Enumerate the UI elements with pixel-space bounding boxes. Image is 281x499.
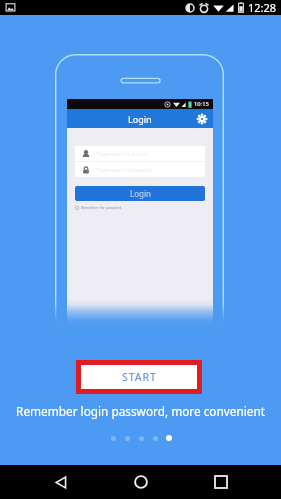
button[interactable]: Back xyxy=(39,465,83,499)
button[interactable]: Recent apps xyxy=(199,465,243,499)
button[interactable]: START xyxy=(81,365,197,389)
button[interactable]: Page 2 xyxy=(120,434,134,442)
staticText: Please enter the account xyxy=(96,151,149,157)
staticText: START xyxy=(122,370,157,384)
staticText: Login xyxy=(128,113,152,125)
button[interactable]: Login xyxy=(75,186,205,201)
button[interactable]: Page 4 xyxy=(148,434,162,442)
staticText: Login xyxy=(130,188,151,199)
staticText: Please enter the password xyxy=(96,167,152,173)
button[interactable]: Home xyxy=(119,465,163,499)
button[interactable]: Page 3 xyxy=(134,434,148,442)
staticText: 12:28 xyxy=(248,0,277,15)
staticText: Remember login password, more convenient xyxy=(16,403,265,419)
button[interactable]: Page 5 xyxy=(162,434,176,442)
staticText: Remember the password xyxy=(81,205,122,210)
button[interactable]: Please enter the password xyxy=(75,162,205,177)
button[interactable]: Settings xyxy=(195,112,208,125)
staticText: 10:15 xyxy=(194,100,209,108)
button[interactable]: Page 1 xyxy=(106,434,120,442)
button[interactable]: Please enter the account xyxy=(75,146,205,161)
button[interactable]: Remember the password xyxy=(75,205,122,210)
